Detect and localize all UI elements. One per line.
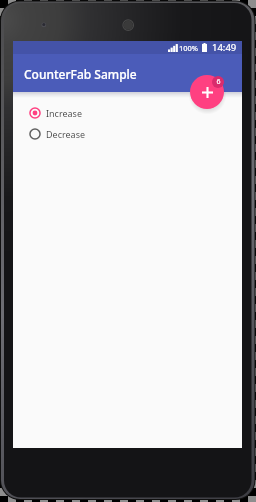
button[interactable]: Increase — [13, 102, 242, 123]
staticText: CounterFab Sample — [24, 66, 137, 82]
staticText: 14:49 — [212, 41, 237, 54]
staticText: 6 — [216, 77, 221, 87]
staticText: Decrease — [46, 128, 86, 140]
staticText: 100% — [179, 43, 199, 53]
button[interactable]: Decrease — [13, 123, 242, 144]
button[interactable]: Add — [190, 75, 224, 109]
staticText: Increase — [46, 107, 82, 119]
